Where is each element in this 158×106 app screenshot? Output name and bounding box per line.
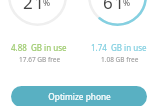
staticText: % [123, 0, 131, 9]
staticText: 1.74 [91, 42, 107, 53]
staticText: 17.67 GB free [19, 55, 61, 64]
staticText: GB in use [111, 42, 147, 53]
staticText: GB in use [31, 42, 67, 53]
staticText: % [43, 0, 51, 9]
staticText: 61 [103, 0, 126, 11]
staticText: 1.08 GB free [101, 55, 139, 64]
staticText: 4.88 [11, 42, 27, 53]
staticText: 21 [23, 0, 46, 11]
staticText: Optimize phone [48, 91, 111, 102]
button[interactable]: Optimize phone [11, 86, 147, 106]
